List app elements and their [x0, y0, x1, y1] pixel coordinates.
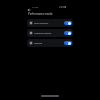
button[interactable]: Gaming	[27, 39, 73, 47]
staticText: Performance mode	[28, 12, 53, 16]
button[interactable]: Back	[27, 8, 31, 12]
staticText: 12:30	[32, 5, 39, 8]
button[interactable]: High perform.	[27, 19, 73, 27]
staticText: Adaptive graphic	[34, 32, 64, 35]
staticText: High perform.	[34, 22, 64, 25]
staticText: Gaming	[34, 42, 64, 45]
button[interactable]: Adaptive graphic	[27, 29, 73, 37]
